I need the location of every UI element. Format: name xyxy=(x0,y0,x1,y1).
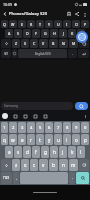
button[interactable]: Mic xyxy=(42,113,48,119)
button[interactable]: F xyxy=(32,29,40,38)
button[interactable]: N xyxy=(59,39,68,48)
button[interactable]: X xyxy=(21,39,29,48)
button[interactable]: Samsung xyxy=(1,102,73,110)
button[interactable]: Back xyxy=(1,10,9,18)
button[interactable]: d xyxy=(23,146,31,158)
button[interactable]: m xyxy=(69,159,78,171)
staticText: N xyxy=(62,41,65,46)
button[interactable]: O xyxy=(72,20,80,28)
button[interactable]: a xyxy=(5,146,13,158)
button[interactable]: Y xyxy=(45,20,53,28)
button[interactable]: C xyxy=(30,39,38,48)
button[interactable]: Backspace xyxy=(79,39,89,48)
button[interactable]: . xyxy=(68,49,77,58)
button[interactable]: H xyxy=(50,29,58,38)
button[interactable]: English (US) xyxy=(18,49,67,58)
button[interactable]: v xyxy=(39,159,48,171)
button[interactable]: K xyxy=(68,29,76,38)
button[interactable]: E xyxy=(18,20,26,28)
button[interactable]: Search xyxy=(75,102,88,110)
button[interactable]: 8 xyxy=(63,122,71,133)
button[interactable]: w xyxy=(9,134,17,145)
button[interactable]: Enter xyxy=(78,49,89,58)
button[interactable]: 1 xyxy=(1,122,8,133)
button[interactable]: Share xyxy=(73,10,81,18)
staticText: L xyxy=(80,31,82,36)
button[interactable]: q xyxy=(1,134,8,145)
button[interactable]: Shift xyxy=(1,39,11,48)
button[interactable]: Voice search xyxy=(76,31,88,43)
staticText: e xyxy=(21,137,24,143)
button[interactable]: L xyxy=(77,29,85,38)
button[interactable]: !#1 xyxy=(1,49,11,58)
button[interactable]: G xyxy=(41,29,49,38)
button[interactable]: . xyxy=(69,172,75,184)
button[interactable]: P xyxy=(81,20,89,28)
button[interactable]: k xyxy=(68,146,76,158)
button[interactable]: p xyxy=(81,134,89,145)
button[interactable]: t xyxy=(36,134,44,145)
button[interactable]: Settings xyxy=(32,113,38,119)
button[interactable]: 0 xyxy=(81,122,89,133)
button[interactable]: c xyxy=(30,159,38,171)
button[interactable]: M xyxy=(69,39,78,48)
button[interactable]: b xyxy=(49,159,58,171)
button[interactable]: , xyxy=(13,172,19,184)
button[interactable]: 7 xyxy=(54,122,62,133)
button[interactable]: Z xyxy=(12,39,20,48)
button[interactable]: y xyxy=(45,134,53,145)
button[interactable]: More options xyxy=(81,11,88,18)
button[interactable]: 5 xyxy=(36,122,44,133)
button[interactable]: Q xyxy=(1,20,8,28)
button[interactable]: Emoji xyxy=(12,49,17,58)
button[interactable]: g xyxy=(41,146,49,158)
button[interactable]: A xyxy=(5,29,13,38)
staticText: l xyxy=(80,149,82,155)
button[interactable]: j xyxy=(59,146,67,158)
button[interactable]: h xyxy=(50,146,58,158)
staticText: y xyxy=(48,137,51,143)
staticText: Z xyxy=(15,41,18,46)
staticText: 0 xyxy=(84,125,87,131)
button[interactable]: i xyxy=(63,134,71,145)
button[interactable]: z xyxy=(12,159,20,171)
button[interactable]: More xyxy=(82,113,88,119)
button[interactable]: 9 xyxy=(72,122,80,133)
staticText: 10:09 xyxy=(3,2,12,7)
button[interactable]: V xyxy=(39,39,48,48)
button[interactable]: o xyxy=(72,134,80,145)
button[interactable]: ?123 xyxy=(1,172,12,184)
button[interactable]: x xyxy=(21,159,29,171)
button[interactable]: D xyxy=(23,29,31,38)
button[interactable]: U xyxy=(54,20,62,28)
button[interactable]: I xyxy=(63,20,71,28)
button[interactable]: s xyxy=(14,146,22,158)
button[interactable]: 6 xyxy=(45,122,53,133)
button[interactable]: Shift xyxy=(1,159,11,171)
staticText: g xyxy=(44,149,47,155)
button[interactable]: Save xyxy=(65,10,73,18)
button[interactable]: GIF xyxy=(12,113,18,119)
button[interactable]: Sticker xyxy=(22,113,28,119)
button[interactable]: Enter xyxy=(76,172,89,184)
button[interactable]: J xyxy=(59,29,67,38)
button[interactable]: Backspace xyxy=(79,159,89,171)
button[interactable]: 3 xyxy=(18,122,26,133)
button[interactable]: 2 xyxy=(9,122,17,133)
button[interactable]: 4 xyxy=(27,122,35,133)
button[interactable]: u xyxy=(54,134,62,145)
staticText: ?123 xyxy=(3,176,10,180)
button[interactable]: r xyxy=(27,134,35,145)
button[interactable]: n xyxy=(59,159,68,171)
button[interactable]: B xyxy=(49,39,58,48)
button[interactable]: T xyxy=(36,20,44,28)
button[interactable]: R xyxy=(27,20,35,28)
staticText: R xyxy=(30,22,33,27)
button[interactable]: S xyxy=(14,29,22,38)
button[interactable]: Google Assistant xyxy=(2,113,8,119)
button[interactable]: e xyxy=(18,134,26,145)
button[interactable]: W xyxy=(9,20,17,28)
button[interactable]: f xyxy=(32,146,40,158)
button[interactable]: l xyxy=(77,146,85,158)
